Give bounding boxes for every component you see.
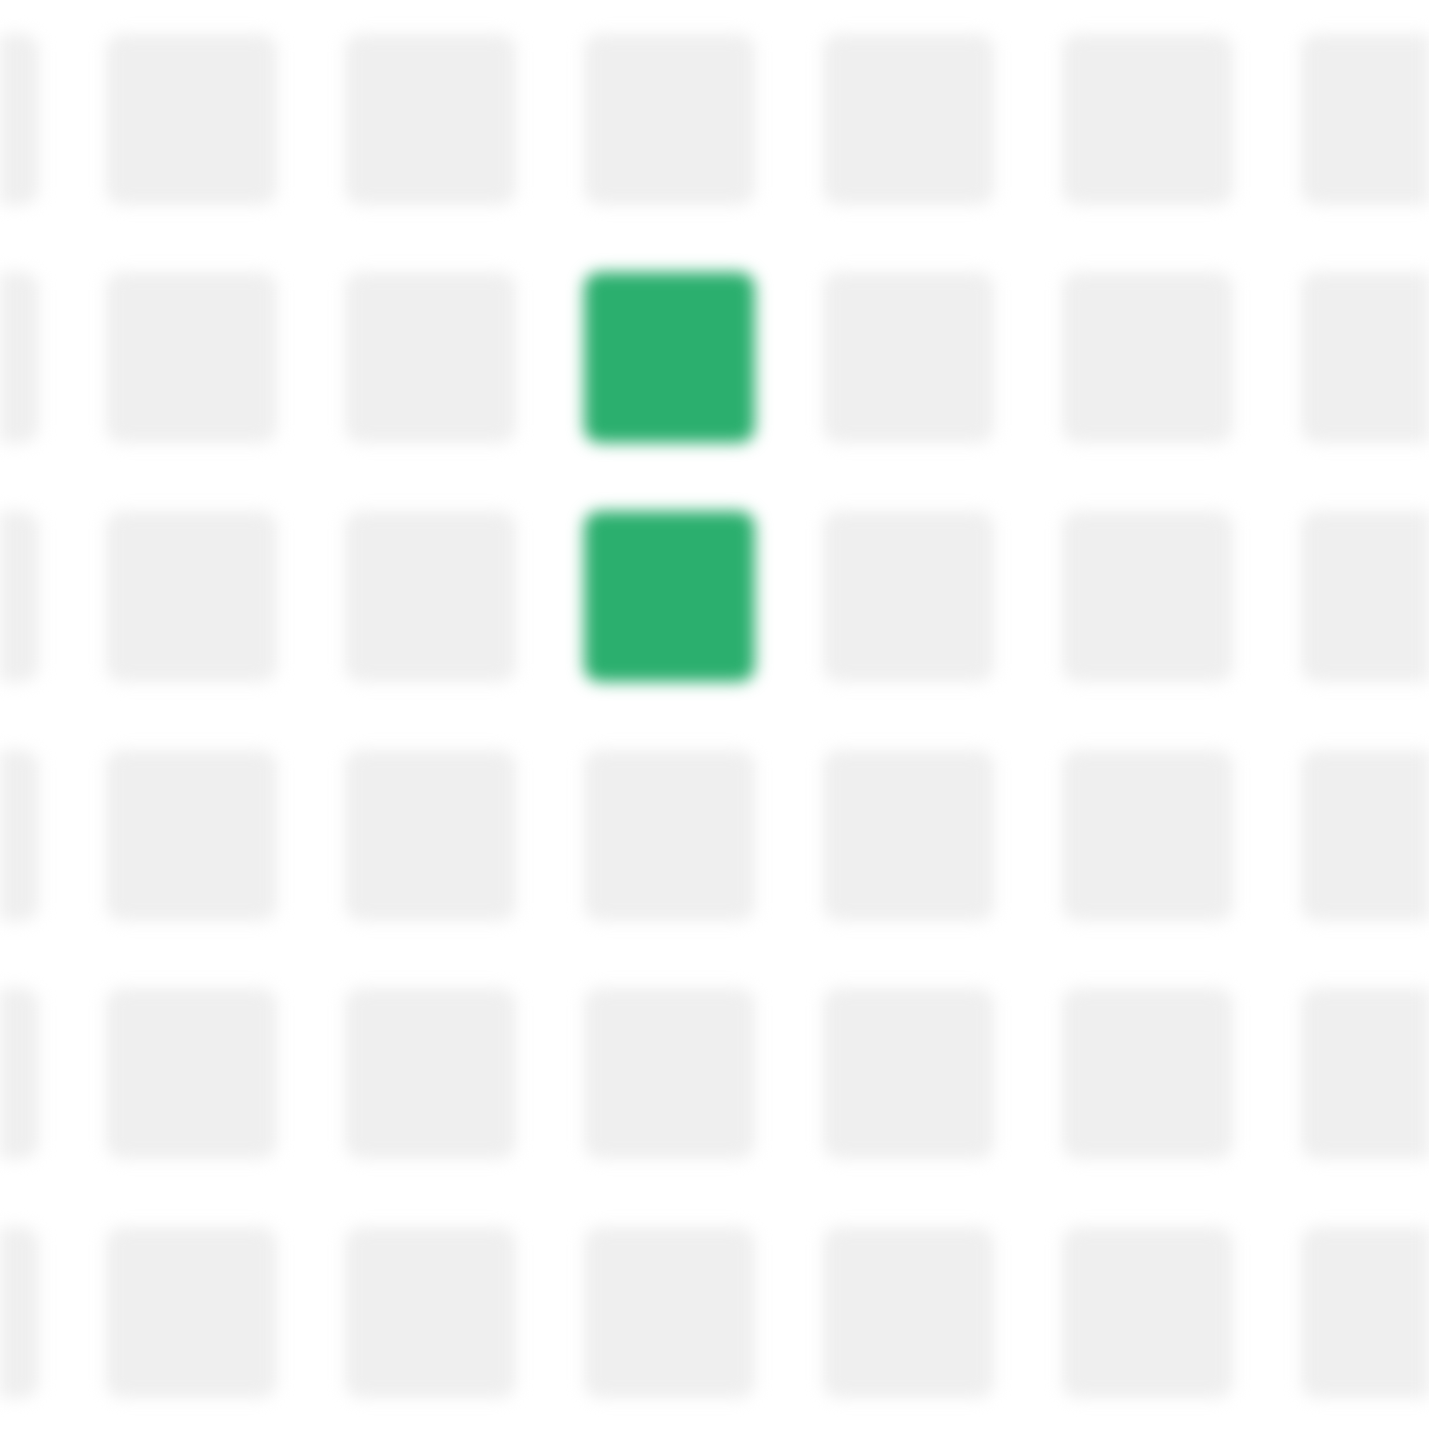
button[interactable]: Day with activity [584, 511, 755, 682]
button[interactable]: Day with activity [584, 272, 755, 443]
other: Activity heat map [0, 0, 1429, 1440]
